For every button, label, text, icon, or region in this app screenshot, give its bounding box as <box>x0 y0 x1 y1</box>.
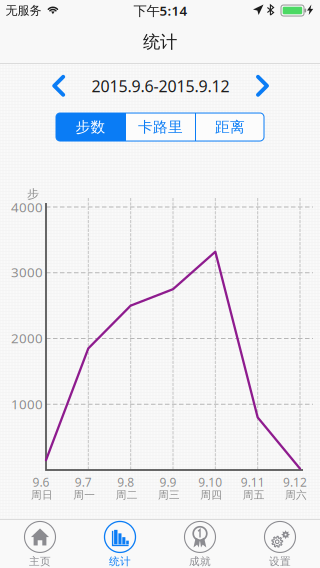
staticText: 3000 <box>11 263 43 281</box>
staticText: 主页 <box>29 555 51 568</box>
staticText: 步数 <box>75 118 105 136</box>
staticText: 9.6 <box>32 474 49 490</box>
staticText: 2000 <box>11 329 43 347</box>
staticText: 卡路里 <box>138 118 183 136</box>
staticText: 统计 <box>109 555 131 568</box>
staticText: 设置 <box>269 555 291 568</box>
button[interactable]: 上一周 <box>52 75 65 97</box>
button[interactable]: 距离 <box>196 113 264 141</box>
staticText: 9.9 <box>159 474 176 490</box>
staticText: 无服务 <box>5 3 41 18</box>
staticText: 9.10 <box>198 474 222 490</box>
staticText: 周五 <box>243 488 265 501</box>
staticText: 1000 <box>11 395 43 413</box>
staticText: 距离 <box>215 118 245 136</box>
staticText: 周一 <box>73 488 95 501</box>
staticText: 2015.9.6-2015.9.12 <box>91 75 229 97</box>
button[interactable]: 主页 <box>0 519 80 568</box>
staticText: 9.12 <box>283 474 307 490</box>
button[interactable]: 成就 <box>160 519 240 568</box>
staticText: 下午5:14 <box>133 2 187 19</box>
staticText: 9.11 <box>241 474 265 490</box>
button[interactable]: 步数 <box>56 113 125 141</box>
staticText: 步 <box>27 187 39 201</box>
button[interactable]: 统计 <box>80 519 160 568</box>
staticText: 统计 <box>143 31 177 53</box>
staticText: 9.7 <box>75 474 92 490</box>
staticText: 成就 <box>189 555 211 568</box>
staticText: 周三 <box>158 488 180 501</box>
staticText: 周日 <box>31 488 53 501</box>
staticText: 周六 <box>285 488 307 501</box>
staticText: 9.8 <box>117 474 134 490</box>
button[interactable]: 卡路里 <box>126 113 195 141</box>
staticText: 周二 <box>116 488 138 501</box>
staticText: 4000 <box>11 198 43 216</box>
button[interactable]: 设置 <box>240 519 320 568</box>
staticText: 周四 <box>200 488 222 501</box>
button[interactable]: 下一周 <box>256 75 269 97</box>
